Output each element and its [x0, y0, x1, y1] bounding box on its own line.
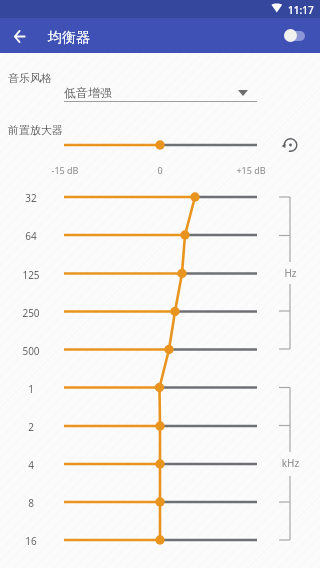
staticText: 均衡器	[48, 29, 90, 47]
staticText: +15 dB	[231, 164, 271, 176]
staticText: 16	[11, 534, 51, 548]
staticText: 11:17	[288, 3, 314, 17]
staticText: 音乐风格	[8, 71, 52, 85]
staticText: Hz	[270, 266, 311, 280]
button[interactable]: Back	[5, 22, 33, 50]
staticText: kHz	[270, 456, 311, 470]
button[interactable]: 低音增强	[64, 82, 257, 102]
staticText: 前置放大器	[8, 123, 63, 137]
staticText: 1	[11, 382, 51, 396]
staticText: 4	[11, 458, 51, 472]
staticText: -15 dB	[45, 164, 85, 176]
staticText: 8	[11, 496, 51, 510]
staticText: 32	[11, 191, 51, 205]
staticText: 0	[150, 164, 170, 176]
staticText: 2	[11, 420, 51, 434]
button[interactable]: Toggle equalizer	[278, 22, 312, 50]
staticText: 125	[11, 268, 51, 282]
button[interactable]: Reset	[278, 133, 302, 157]
staticText: 500	[11, 344, 51, 358]
staticText: 低音增强	[64, 85, 112, 100]
staticText: 64	[11, 229, 51, 243]
staticText: 250	[11, 306, 51, 320]
